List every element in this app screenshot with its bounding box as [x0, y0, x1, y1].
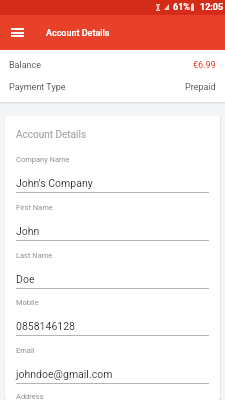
staticText: €6.99 — [193, 60, 216, 71]
button[interactable]: Mobile — [16, 294, 209, 336]
staticText: First Name — [16, 203, 53, 212]
staticText: Last Name — [16, 251, 53, 260]
staticText: Address — [16, 392, 44, 400]
staticText: Account Details — [16, 129, 87, 141]
staticText: Account Details — [46, 28, 110, 39]
button[interactable]: Email — [16, 342, 209, 384]
button[interactable]: Open navigation menu — [0, 15, 35, 50]
staticText: John's Company — [16, 177, 93, 189]
staticText: Email — [16, 346, 35, 355]
staticText: Mobile — [16, 298, 39, 307]
staticText: johndoe@gmail.com — [16, 368, 113, 380]
button[interactable]: Address — [16, 392, 209, 400]
staticText: John — [16, 225, 40, 237]
staticText: Payment Type — [9, 82, 66, 93]
staticText: Doe — [16, 273, 35, 285]
staticText: 61% — [173, 2, 190, 13]
staticText: Prepaid — [185, 82, 216, 93]
staticText: Company Name — [16, 155, 70, 164]
staticText: 12:05 — [200, 2, 224, 13]
staticText: 0858146128 — [16, 320, 76, 332]
button[interactable]: Company Name — [16, 151, 209, 193]
staticText: Balance — [9, 60, 42, 71]
button[interactable]: Last Name — [16, 247, 209, 289]
button[interactable]: First Name — [16, 199, 209, 241]
